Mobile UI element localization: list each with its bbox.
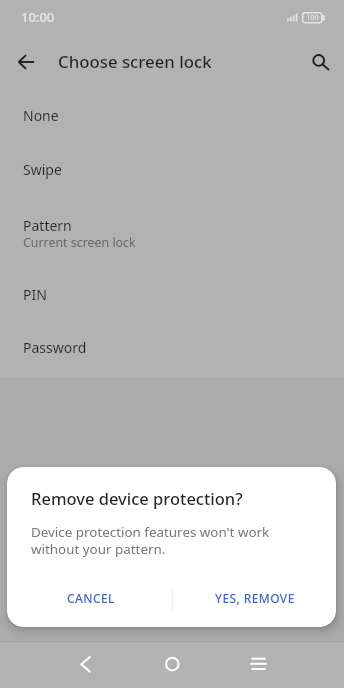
button[interactable]: Home xyxy=(150,641,194,688)
staticText: Choose screen lock xyxy=(58,50,212,73)
button[interactable]: Recent apps xyxy=(236,641,280,688)
staticText: Remove device protection? xyxy=(31,487,243,509)
staticText: 100 xyxy=(306,12,319,22)
staticText: Swipe xyxy=(23,160,62,179)
staticText: Password xyxy=(23,338,87,357)
button[interactable]: PIN xyxy=(0,270,344,324)
button[interactable]: Search xyxy=(302,44,338,80)
button[interactable]: Back xyxy=(64,641,108,688)
staticText: None xyxy=(23,106,59,125)
staticText: Pattern xyxy=(23,216,72,235)
button[interactable]: Swipe xyxy=(0,145,344,199)
staticText: YES, REMOVE xyxy=(215,590,295,606)
button[interactable]: Back xyxy=(8,44,44,80)
button[interactable]: Pattern xyxy=(0,201,344,271)
button[interactable]: CANCEL xyxy=(38,577,144,619)
staticText: 10:00 xyxy=(21,8,55,26)
staticText: CANCEL xyxy=(67,590,115,606)
button[interactable]: YES, REMOVE xyxy=(189,577,320,619)
staticText: Current screen lock xyxy=(23,234,136,251)
staticText: Device protection features won't work wi… xyxy=(31,523,270,558)
button[interactable]: None xyxy=(0,91,344,145)
button[interactable]: Password xyxy=(0,323,344,377)
staticText: PIN xyxy=(23,285,47,304)
